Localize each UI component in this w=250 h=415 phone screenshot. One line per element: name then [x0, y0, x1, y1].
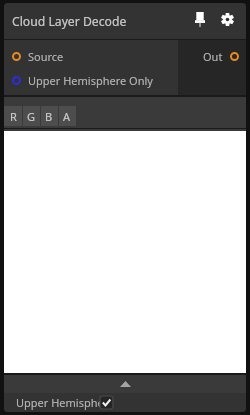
staticText: B: [45, 109, 53, 124]
staticText: Out: [203, 49, 223, 64]
staticText: R: [10, 109, 17, 124]
staticText: Source: [28, 49, 64, 64]
button[interactable]: G: [22, 106, 40, 126]
staticText: Upper Hemisphere Only: [28, 73, 153, 88]
button[interactable]: Source: [4, 44, 246, 68]
button[interactable]: A: [58, 106, 76, 126]
button[interactable]: Upper Hemisphere Only toggle: [100, 396, 113, 409]
button[interactable]: Cloud Layer Decode: [4, 3, 246, 39]
button[interactable]: Upper Hemisphere Only: [4, 393, 100, 412]
staticText: Upper Hemisphere Only: [16, 395, 100, 410]
staticText: A: [63, 109, 71, 124]
button[interactable]: Upper Hemisphere Only: [4, 68, 246, 92]
button[interactable]: R: [4, 106, 22, 126]
staticText: G: [27, 109, 36, 124]
button[interactable]: Pin panel: [191, 4, 209, 38]
staticText: Cloud Layer Decode: [12, 13, 127, 30]
button[interactable]: B: [40, 106, 58, 126]
button[interactable]: Settings: [218, 4, 236, 38]
button[interactable]: Collapse: [114, 377, 136, 391]
